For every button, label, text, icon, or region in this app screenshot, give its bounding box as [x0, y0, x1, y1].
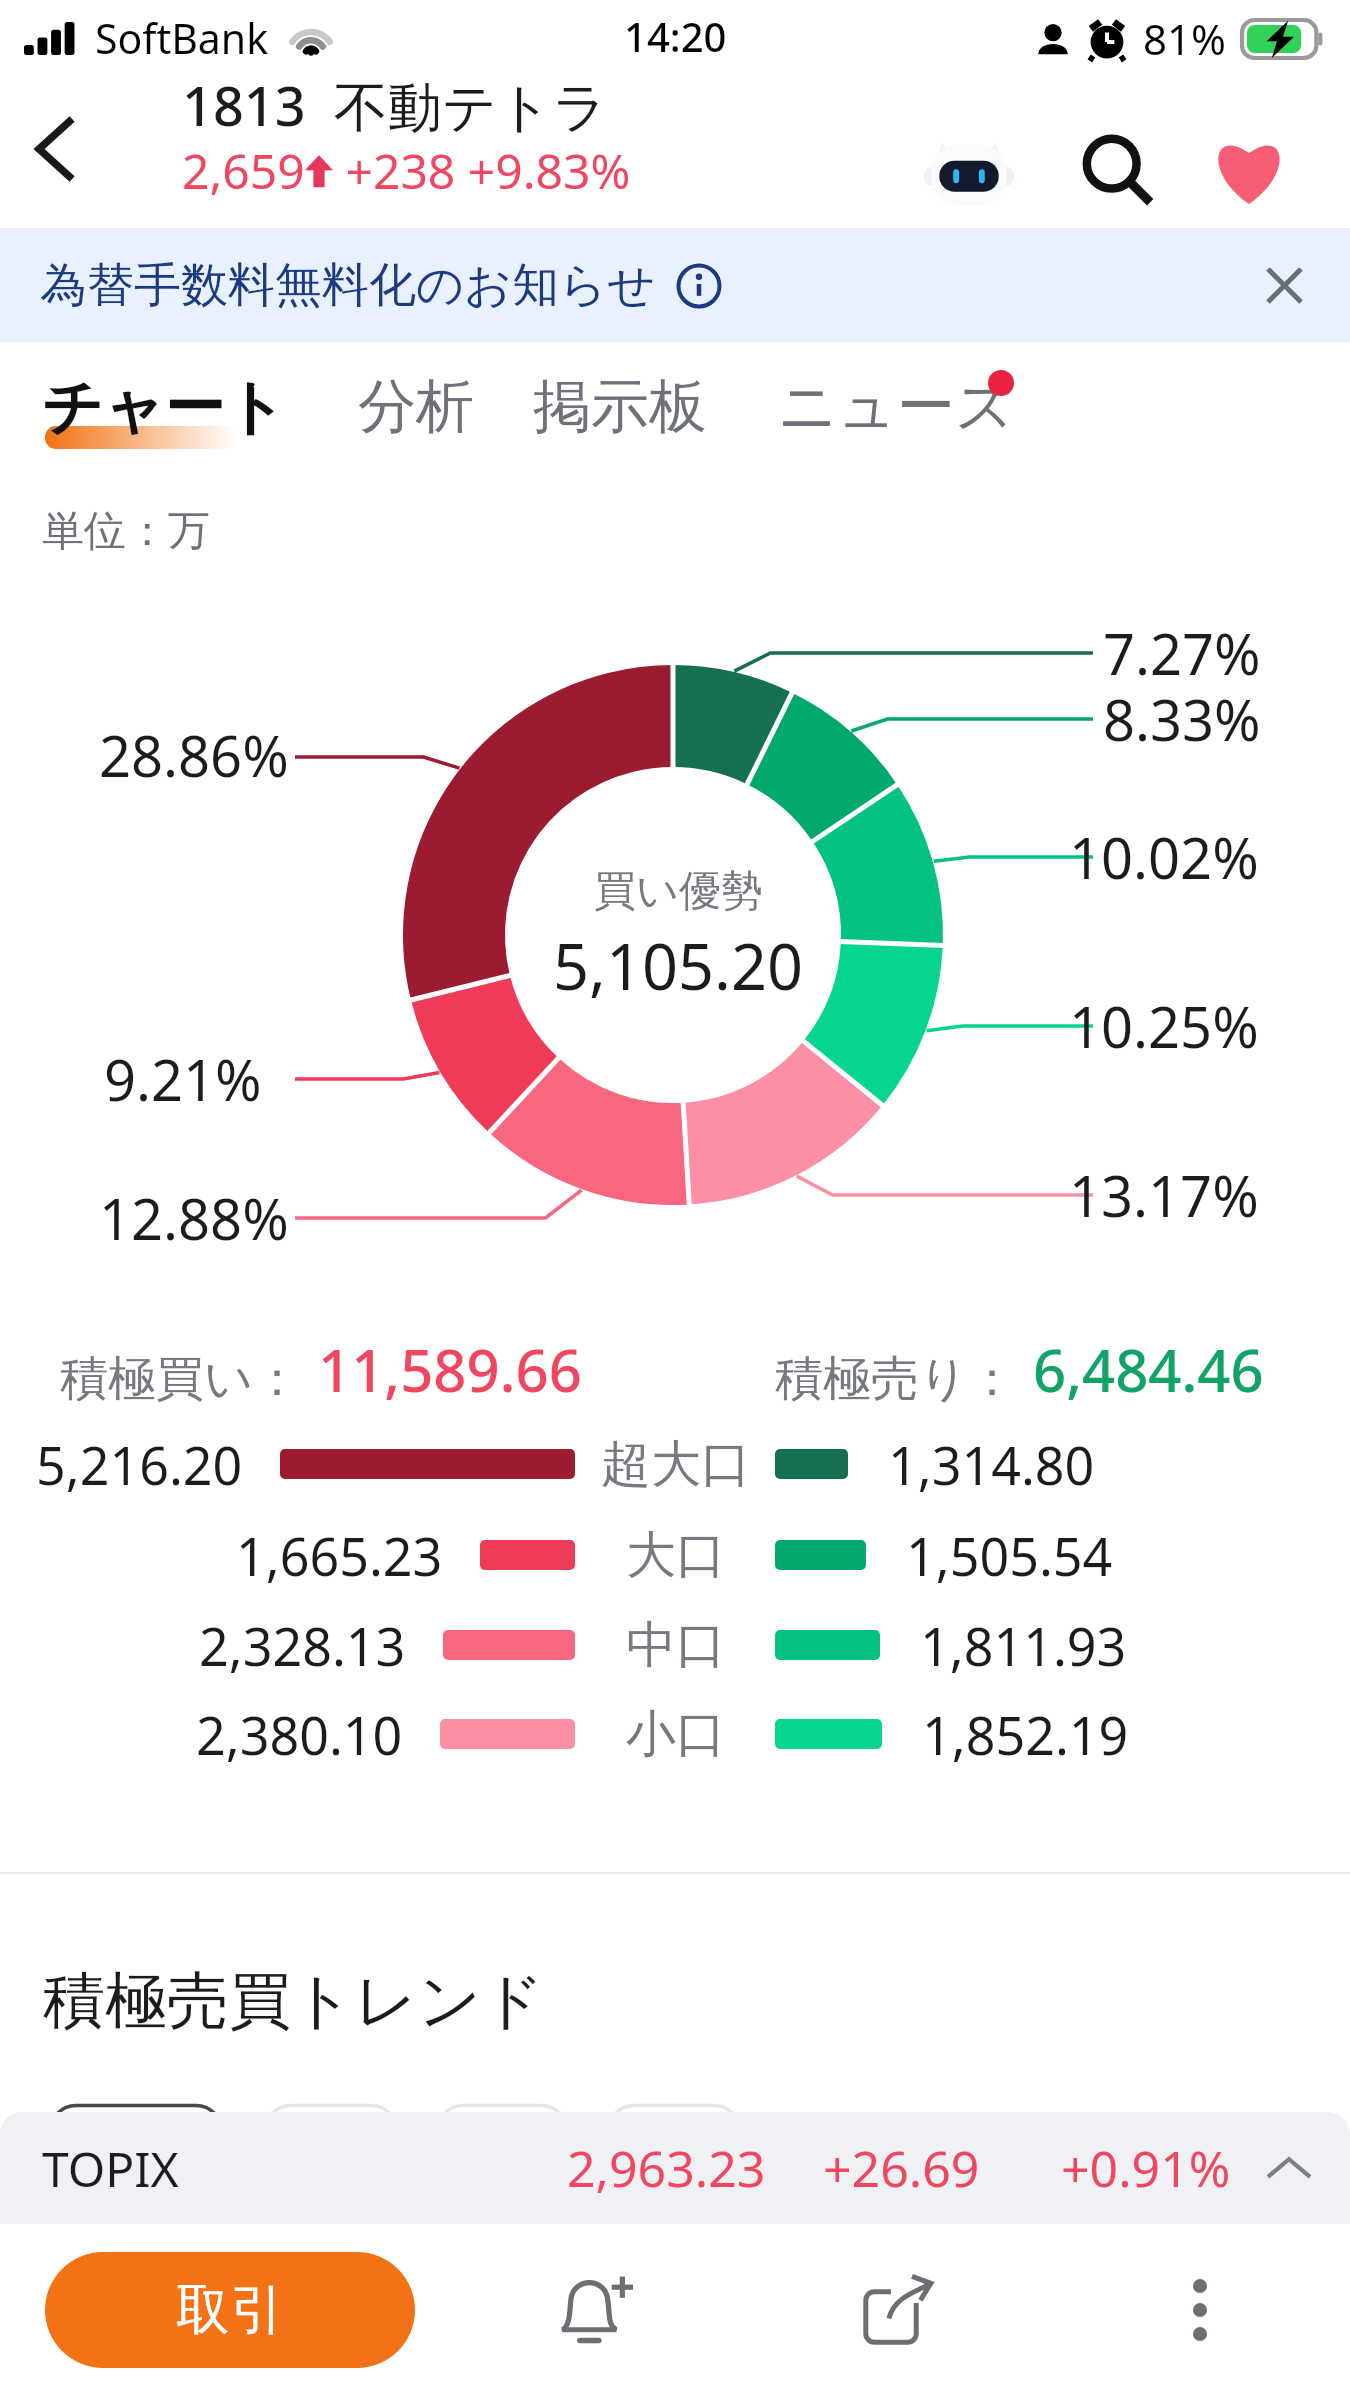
button[interactable]: 為替手数料無料化のお知らせ: [0, 228, 1350, 342]
staticText: 1,665.23: [236, 1520, 443, 1591]
staticText: 積極売買トレンド: [43, 1962, 545, 2040]
staticText: 2,659: [182, 138, 305, 203]
staticText: 10.25%: [1069, 988, 1259, 1064]
staticText: 7.27%: [1103, 615, 1261, 691]
button[interactable]: 取引: [45, 2252, 415, 2368]
staticText: 1,811.93: [920, 1610, 1127, 1681]
staticText: 超大口: [601, 1433, 751, 1496]
staticText: 12.88%: [99, 1180, 289, 1256]
staticText: 1,852.19: [922, 1699, 1129, 1770]
staticText: 9.21%: [104, 1041, 262, 1117]
staticText: 取引: [176, 2276, 284, 2344]
staticText: 掲示板: [533, 370, 707, 443]
staticText: 8.33%: [1103, 681, 1261, 757]
staticText: 積極買い：: [60, 1349, 302, 1409]
staticText: 単位：万: [42, 505, 210, 558]
button[interactable]: ニュース: [778, 370, 1015, 443]
staticText: TOPIX: [42, 2136, 179, 2201]
staticText: ニュース: [778, 370, 1015, 443]
button[interactable]: 掲示板: [533, 370, 707, 443]
staticText: 買い優勢: [594, 865, 763, 918]
button[interactable]: Close banner: [1240, 241, 1328, 329]
button[interactable]: チャート: [42, 370, 287, 446]
staticText: 1,505.54: [906, 1520, 1113, 1591]
staticText: 2,380.10: [196, 1699, 403, 1770]
button[interactable]: Search: [1058, 110, 1178, 230]
staticText: チャート: [42, 370, 287, 446]
button[interactable]: Add alert: [535, 2250, 655, 2370]
staticText: 為替手数料無料化のお知らせ: [40, 256, 656, 315]
staticText: 5,105.20: [553, 923, 803, 1009]
button[interactable]: Back: [0, 89, 120, 209]
staticText: 積極売り：: [775, 1349, 1017, 1409]
button[interactable]: TOPIX: [0, 2112, 1350, 2224]
staticText: 2,328.13: [199, 1610, 406, 1681]
button[interactable]: Favorite: [1189, 110, 1309, 230]
staticText: 6,484.46: [1033, 1330, 1264, 1409]
staticText: +238 +9.83%: [333, 138, 631, 203]
staticText: 14:20: [624, 9, 727, 63]
staticText: 分析: [358, 370, 474, 443]
staticText: 81%: [1143, 10, 1226, 67]
staticText: +26.69: [823, 2134, 980, 2202]
button[interactable]: AI assistant: [909, 110, 1029, 230]
staticText: 2,963.23: [567, 2134, 766, 2202]
staticText: 28.86%: [99, 717, 289, 793]
staticText: 5,216.20: [36, 1429, 243, 1500]
staticText: SoftBank: [95, 10, 269, 66]
staticText: 中口: [626, 1614, 726, 1677]
staticText: 小口: [626, 1703, 726, 1766]
button[interactable]: 分析: [358, 370, 474, 443]
staticText: +0.91%: [1061, 2134, 1231, 2202]
staticText: 1,314.80: [888, 1429, 1095, 1500]
staticText: 10.02%: [1069, 819, 1259, 895]
button[interactable]: Share: [838, 2250, 958, 2370]
staticText: 大口: [626, 1524, 726, 1587]
staticText: 13.17%: [1069, 1157, 1259, 1233]
staticText: 11,589.66: [318, 1330, 582, 1409]
staticText: 1813 不動テトラ: [182, 68, 608, 142]
button[interactable]: More options: [1140, 2250, 1260, 2370]
